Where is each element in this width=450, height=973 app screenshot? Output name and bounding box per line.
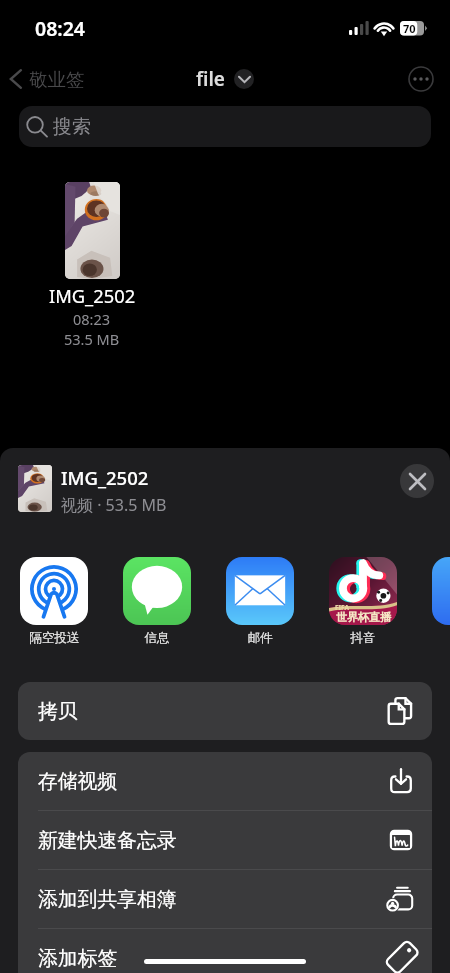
staticText: 抖音: [350, 630, 376, 646]
staticText: FIFA: [335, 603, 350, 612]
staticText: 53.5 MB: [64, 329, 120, 349]
button[interactable]: 隔空投送: [20, 557, 88, 646]
staticText: 信息: [144, 630, 170, 646]
staticText: IMG_2502: [61, 465, 149, 490]
staticText: 敬业签: [29, 68, 85, 91]
button[interactable]: More options: [408, 66, 434, 92]
staticText: 世界杯直播: [336, 610, 391, 624]
staticText: IMG_2502: [49, 283, 136, 308]
staticText: 邮件: [247, 630, 273, 646]
button[interactable]: 添加到共享相簿: [18, 870, 432, 928]
button[interactable]: 邮件: [226, 557, 294, 646]
staticText: 添加标签: [38, 946, 118, 971]
staticText: 08:24: [35, 15, 85, 42]
staticText: 存储视频: [38, 769, 118, 794]
button[interactable]: 信息: [123, 557, 191, 646]
button[interactable]: IMG_2502: [42, 182, 142, 349]
staticText: 添加到共享相簿: [38, 887, 177, 912]
staticText: 70: [403, 21, 416, 36]
button[interactable]: 新建快速备忘录: [18, 811, 432, 869]
button[interactable]: 敬业签: [4, 58, 91, 100]
button[interactable]: 搜索: [19, 106, 431, 147]
staticText: 视频 · 53.5 MB: [61, 494, 167, 516]
button[interactable]: file: [196, 66, 254, 92]
button[interactable]: 拷贝: [18, 682, 432, 740]
staticText: 隔空投送: [29, 630, 80, 646]
staticText: 08:23: [73, 309, 111, 329]
button[interactable]: FIFA: [329, 557, 397, 646]
staticText: 拷贝: [38, 699, 78, 724]
staticText: 搜索: [53, 115, 91, 139]
staticText: file: [196, 66, 225, 92]
button[interactable]: [432, 557, 450, 625]
button[interactable]: 添加标签: [18, 929, 432, 973]
button[interactable]: Close: [400, 464, 434, 498]
button[interactable]: 存储视频: [18, 752, 432, 810]
staticText: 新建快速备忘录: [38, 828, 177, 853]
